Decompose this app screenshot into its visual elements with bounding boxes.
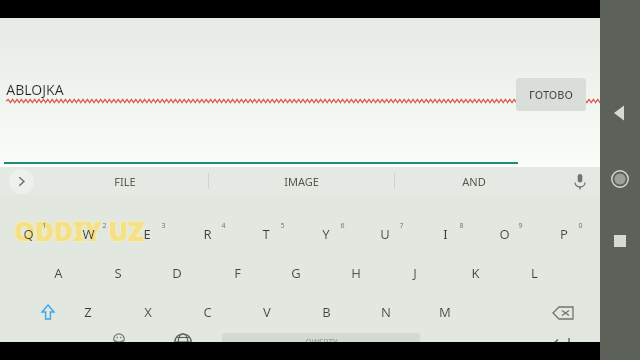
button[interactable]: U (366, 217, 404, 251)
staticText: F (234, 264, 241, 282)
staticText: 0 (578, 221, 583, 231)
button[interactable]: Expand suggestions (9, 169, 34, 194)
button[interactable]: S (99, 256, 137, 290)
button[interactable]: C (188, 295, 226, 329)
staticText: ODDIY UZ (15, 214, 145, 249)
staticText: ?123 (22, 338, 46, 353)
button[interactable]: F (218, 256, 256, 290)
staticText: Y (322, 225, 330, 243)
button[interactable]: AND (428, 167, 520, 195)
button[interactable]: I (426, 217, 464, 251)
staticText: T (262, 225, 270, 243)
staticText: 7 (399, 221, 404, 231)
button[interactable]: ?123 (22, 338, 46, 353)
button[interactable]: Voice input (568, 169, 592, 193)
button[interactable]: IMAGE (255, 167, 347, 195)
staticText: W (82, 225, 95, 243)
staticText: 1 (42, 221, 47, 231)
staticText: L (531, 264, 538, 282)
button[interactable]: L (515, 256, 553, 290)
button[interactable]: H (337, 256, 375, 290)
button[interactable]: P (545, 217, 583, 251)
staticText: G (291, 264, 301, 282)
staticText: 5 (280, 221, 285, 231)
staticText: . (478, 335, 481, 349)
button[interactable]: O (485, 217, 523, 251)
button[interactable]: E (128, 217, 166, 251)
staticText: ODDIY UZ (15, 212, 145, 247)
staticText: FILE (114, 174, 136, 189)
button[interactable]: Emoji (108, 331, 130, 353)
staticText: 9 (518, 221, 523, 231)
staticText: 6 (340, 221, 345, 231)
staticText: U (380, 225, 390, 243)
staticText: ABLOJKA (6, 80, 64, 99)
button[interactable]: G (277, 256, 315, 290)
button[interactable]: Change language (172, 331, 194, 353)
staticText: 8 (459, 221, 464, 231)
button[interactable]: Enter (548, 331, 574, 357)
staticText: AND (462, 174, 486, 189)
staticText: QWERTY (305, 337, 338, 348)
button[interactable]: . (478, 335, 492, 349)
staticText: B (322, 303, 331, 321)
staticText: N (381, 303, 391, 321)
staticText: X (144, 303, 152, 321)
button[interactable]: N (367, 295, 405, 329)
staticText: ODDIY UZ (14, 213, 144, 248)
staticText: J (413, 264, 417, 282)
staticText: V (263, 303, 271, 321)
button[interactable]: J (396, 256, 434, 290)
staticText: IMAGE (284, 174, 319, 189)
staticText: C (203, 303, 212, 321)
staticText: R (203, 225, 212, 243)
button[interactable]: K (456, 256, 494, 290)
staticText: Q (23, 225, 34, 243)
staticText: ГОТОВО (529, 87, 573, 102)
staticText: ODDIY UZ (13, 214, 143, 249)
button[interactable]: ГОТОВО (516, 78, 586, 111)
button[interactable]: Q (9, 217, 47, 251)
button[interactable]: M (426, 295, 464, 329)
staticText: S (114, 264, 122, 282)
staticText: P (560, 225, 568, 243)
button[interactable]: R (188, 217, 226, 251)
staticText: ODDIY UZ (13, 212, 143, 247)
staticText: M (439, 303, 451, 321)
button[interactable]: W (69, 217, 107, 251)
button[interactable]: Y (307, 217, 345, 251)
button[interactable]: V (248, 295, 286, 329)
button[interactable]: T (247, 217, 285, 251)
staticText: Z (84, 303, 92, 321)
staticText: H (351, 264, 361, 282)
button[interactable]: QWERTY (222, 333, 420, 351)
staticText: K (471, 264, 480, 282)
button[interactable]: Home (607, 166, 633, 192)
button[interactable]: Recent apps (609, 230, 631, 252)
button[interactable]: Back (607, 100, 633, 126)
staticText: 4 (221, 221, 226, 231)
button[interactable]: Backspace (550, 300, 576, 326)
button[interactable]: A (39, 256, 77, 290)
staticText: A (54, 264, 63, 282)
button[interactable]: Z (69, 295, 107, 329)
button[interactable]: B (307, 295, 345, 329)
staticText: 3 (161, 221, 166, 231)
button[interactable]: X (129, 295, 167, 329)
staticText: 2 (102, 221, 107, 231)
staticText: I (443, 225, 448, 243)
button[interactable]: FILE (79, 167, 171, 195)
staticText: O (499, 225, 510, 243)
button[interactable]: Shift (36, 300, 60, 324)
staticText: D (172, 264, 182, 282)
staticText: E (143, 225, 151, 243)
button[interactable]: D (158, 256, 196, 290)
